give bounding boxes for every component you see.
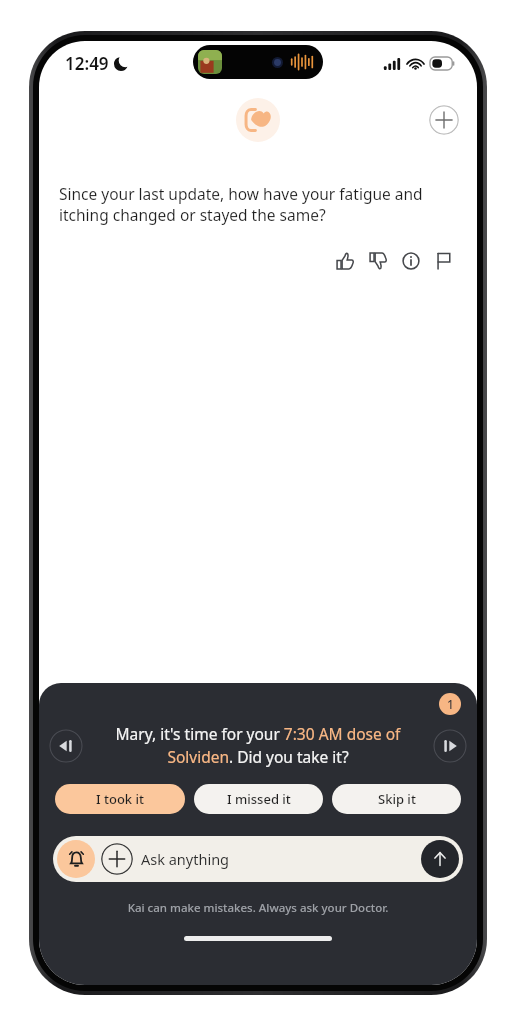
button[interactable]: Next xyxy=(433,729,467,763)
button[interactable]: I missed it xyxy=(194,784,323,814)
staticText: Ask anything xyxy=(141,849,421,869)
staticText: Kai can make mistakes. Always ask your D… xyxy=(39,900,477,916)
button[interactable]: Send xyxy=(421,840,459,878)
staticText: Mary, it's time for your 7:30 AM dose of… xyxy=(87,723,429,768)
button[interactable]: Previous xyxy=(49,729,83,763)
button[interactable]: New chat xyxy=(429,105,459,135)
staticText: I missed it xyxy=(227,790,291,808)
staticText: I took it xyxy=(96,790,144,808)
button[interactable]: Reminders xyxy=(53,836,463,882)
staticText: Skip it xyxy=(378,790,416,808)
button[interactable]: Information xyxy=(398,248,424,274)
button[interactable]: Kai logo xyxy=(236,98,280,142)
button[interactable]: Reminders xyxy=(57,840,95,878)
staticText: Since your last update, how have your fa… xyxy=(59,183,457,226)
button[interactable]: Report xyxy=(431,248,457,274)
button[interactable]: Skip it xyxy=(332,784,461,814)
button[interactable]: Dislike xyxy=(365,248,391,274)
button[interactable]: I took it xyxy=(55,784,185,814)
staticText: 1 xyxy=(447,696,454,712)
button[interactable]: Add attachment xyxy=(101,843,133,875)
staticText: 12:49 xyxy=(65,52,109,75)
button[interactable]: Like xyxy=(332,248,358,274)
